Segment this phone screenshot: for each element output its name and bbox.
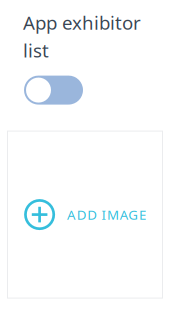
staticText: ADD IMAGE bbox=[67, 206, 146, 223]
staticText: App exhibitor list bbox=[23, 10, 141, 63]
button[interactable]: App exhibitor list toggle bbox=[24, 76, 83, 105]
button[interactable]: ADD IMAGE bbox=[7, 131, 163, 299]
